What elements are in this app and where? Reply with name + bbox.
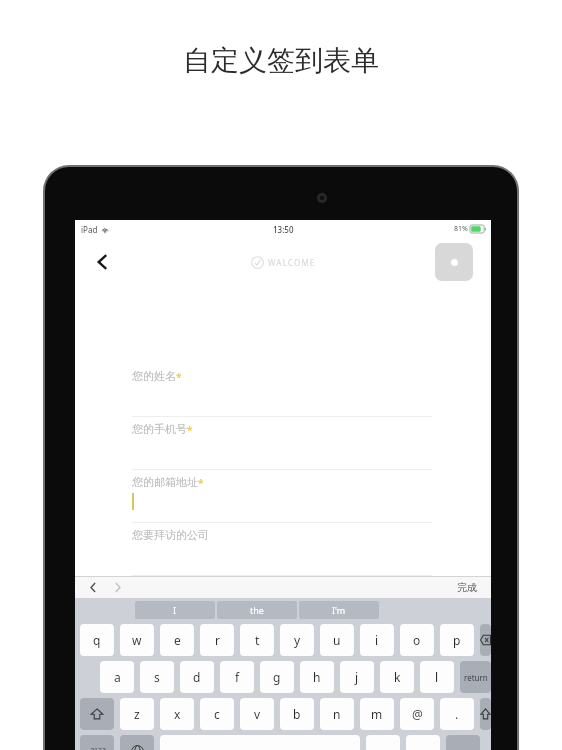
- staticText: WALCOME: [268, 257, 316, 268]
- button[interactable]: z: [120, 698, 154, 730]
- button[interactable]: a: [100, 661, 134, 693]
- button[interactable]: [366, 735, 400, 750]
- staticText: f: [235, 669, 240, 685]
- staticText: r: [215, 632, 220, 648]
- staticText: .?123: [89, 746, 106, 750]
- staticText: return: [464, 672, 488, 683]
- staticText: @: [412, 706, 423, 722]
- staticText: n: [333, 706, 341, 722]
- staticText: *: [187, 423, 193, 437]
- button[interactable]: ⌫: [480, 624, 491, 656]
- staticText: y: [294, 632, 301, 648]
- button[interactable]: ⇧: [480, 698, 491, 730]
- staticText: z: [134, 706, 140, 722]
- button[interactable]: [446, 735, 480, 750]
- staticText: p: [453, 632, 461, 648]
- button[interactable]: b: [280, 698, 314, 730]
- staticText: I: [173, 604, 177, 616]
- button[interactable]: t: [240, 624, 274, 656]
- staticText: t: [255, 632, 260, 648]
- button[interactable]: 您的姓名: [75, 364, 491, 417]
- staticText: 您的姓名: [132, 369, 176, 383]
- staticText: m: [371, 706, 383, 722]
- staticText: j: [355, 669, 359, 685]
- staticText: o: [413, 632, 421, 648]
- staticText: 您要拜访的公司: [132, 528, 209, 542]
- staticText: g: [273, 669, 281, 685]
- button[interactable]: v: [240, 698, 274, 730]
- staticText: .: [455, 706, 459, 722]
- button[interactable]: l: [420, 661, 454, 693]
- button[interactable]: g: [260, 661, 294, 693]
- button[interactable]: x: [160, 698, 194, 730]
- button[interactable]: q: [80, 624, 114, 656]
- staticText: c: [214, 706, 220, 722]
- staticText: h: [313, 669, 321, 685]
- button[interactable]: h: [300, 661, 334, 693]
- button[interactable]: ⇧: [80, 698, 114, 730]
- staticText: *: [198, 476, 204, 490]
- staticText: i: [375, 632, 379, 648]
- button[interactable]: I: [135, 601, 215, 619]
- staticText: the: [250, 604, 264, 616]
- button[interactable]: r: [200, 624, 234, 656]
- button[interactable]: Next field: [109, 579, 125, 595]
- button[interactable]: return: [460, 661, 491, 693]
- button[interactable]: 🌐: [120, 735, 154, 750]
- button[interactable]: Menu: [435, 243, 473, 281]
- staticText: l: [435, 669, 439, 685]
- button[interactable]: .: [440, 698, 474, 730]
- button[interactable]: j: [340, 661, 374, 693]
- button[interactable]: m: [360, 698, 394, 730]
- staticText: u: [333, 632, 341, 648]
- button[interactable]: y: [280, 624, 314, 656]
- staticText: q: [93, 632, 101, 648]
- staticText: v: [254, 706, 261, 722]
- button[interactable]: Back: [87, 246, 119, 278]
- button[interactable]: the: [217, 601, 297, 619]
- button[interactable]: [406, 735, 440, 750]
- staticText: w: [132, 632, 142, 648]
- button[interactable]: 完成: [457, 581, 477, 594]
- button[interactable]: 您要拜访的公司: [75, 523, 491, 576]
- button[interactable]: .?123: [80, 735, 114, 750]
- button[interactable]: 您的手机号: [75, 417, 491, 470]
- staticText: 您的邮箱地址: [132, 475, 198, 489]
- button[interactable]: c: [200, 698, 234, 730]
- button[interactable]: k: [380, 661, 414, 693]
- staticText: 自定义签到表单: [183, 43, 379, 78]
- staticText: 完成: [457, 581, 477, 594]
- staticText: iPad: [81, 224, 98, 235]
- button[interactable]: I'm: [299, 601, 379, 619]
- button[interactable]: w: [120, 624, 154, 656]
- button[interactable]: o: [400, 624, 434, 656]
- staticText: 您的手机号: [132, 422, 187, 436]
- staticText: a: [114, 669, 121, 685]
- staticText: 81%: [454, 224, 468, 234]
- button[interactable]: d: [180, 661, 214, 693]
- button[interactable]: u: [320, 624, 354, 656]
- button[interactable]: n: [320, 698, 354, 730]
- staticText: b: [293, 706, 301, 722]
- button[interactable]: i: [360, 624, 394, 656]
- staticText: I'm: [332, 604, 346, 616]
- button[interactable]: s: [140, 661, 174, 693]
- staticText: 13:50: [273, 224, 294, 235]
- staticText: k: [394, 669, 401, 685]
- staticText: s: [154, 669, 160, 685]
- button[interactable]: p: [440, 624, 474, 656]
- button[interactable]: 您的邮箱地址: [75, 470, 491, 523]
- button[interactable]: Previous field: [85, 579, 101, 595]
- staticText: x: [174, 706, 181, 722]
- button[interactable]: f: [220, 661, 254, 693]
- button[interactable]: @: [400, 698, 434, 730]
- staticText: e: [174, 632, 181, 648]
- staticText: d: [193, 669, 201, 685]
- button[interactable]: e: [160, 624, 194, 656]
- staticText: *: [176, 370, 182, 384]
